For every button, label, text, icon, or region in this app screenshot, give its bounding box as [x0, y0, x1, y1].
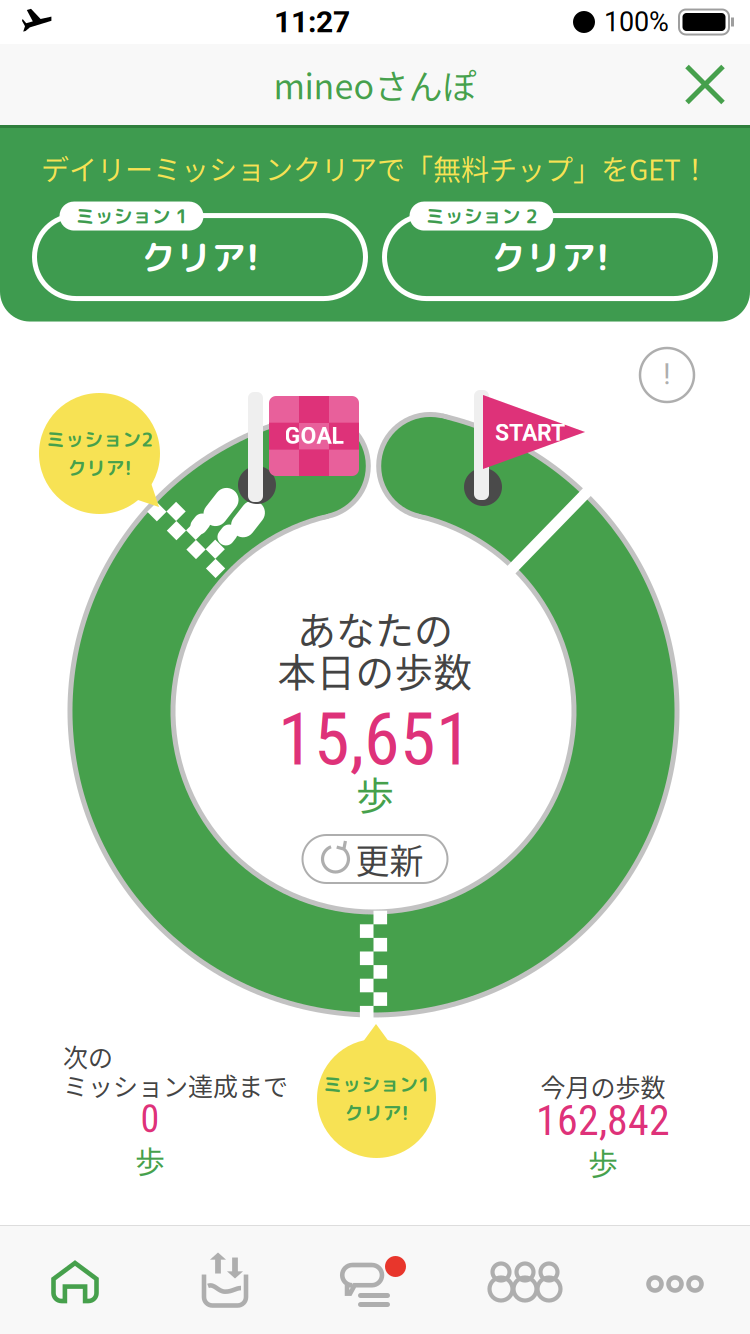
staticText: 更新	[355, 834, 423, 884]
staticText: 次の	[63, 1038, 113, 1074]
staticText: 歩	[135, 1138, 165, 1181]
staticText: 歩	[588, 1140, 618, 1183]
staticText: 162,842	[536, 1096, 670, 1145]
button[interactable]: Information	[637, 345, 697, 405]
staticText: クリア!	[141, 233, 259, 281]
staticText: GOAL	[284, 422, 343, 449]
button[interactable]: Community	[300, 1226, 450, 1334]
staticText: START	[495, 419, 565, 446]
button[interactable]: More	[600, 1226, 750, 1334]
staticText: ミッション 2	[425, 203, 537, 229]
staticText: ミッション1	[323, 1071, 430, 1097]
button[interactable]: 更新	[302, 835, 447, 883]
button[interactable]: Home	[0, 1226, 150, 1334]
staticText: 100%	[604, 6, 669, 38]
staticText: 11:27	[274, 4, 350, 40]
staticText: 15,651	[278, 698, 472, 782]
staticText: クリア!	[491, 233, 609, 281]
staticText: ミッション達成まで	[63, 1067, 288, 1103]
button[interactable]: Members	[450, 1226, 600, 1334]
button[interactable]: Data	[150, 1226, 300, 1334]
staticText: 0	[140, 1097, 159, 1141]
staticText: ミッション 1	[75, 203, 187, 229]
button[interactable]: Close	[660, 44, 750, 125]
staticText: デイリーミッションクリアで「無料チップ」をGET！	[41, 148, 709, 188]
staticText: あなたの	[297, 600, 453, 656]
staticText: !	[663, 356, 671, 392]
staticText: クリア!	[344, 1099, 408, 1126]
staticText: 本日の歩数	[277, 642, 472, 698]
staticText: ミッション2	[46, 426, 153, 452]
staticText: 歩	[356, 765, 394, 820]
staticText: mineoさんぽ	[273, 60, 476, 109]
staticText: 今月の歩数	[540, 1068, 665, 1104]
staticText: クリア!	[67, 454, 131, 481]
